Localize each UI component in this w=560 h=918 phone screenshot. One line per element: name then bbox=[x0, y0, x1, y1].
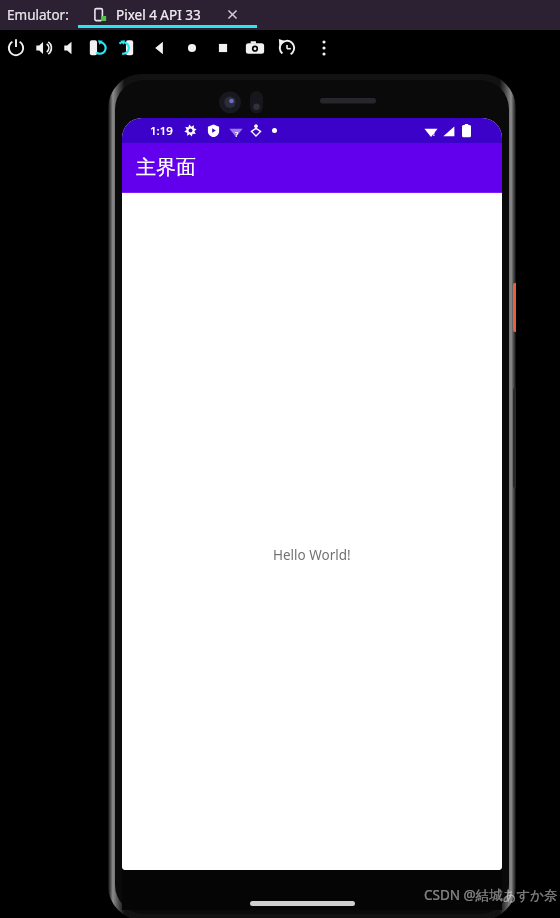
button[interactable]: Rotate right bbox=[113, 36, 137, 60]
button[interactable]: 主界面 bbox=[122, 143, 502, 192]
button[interactable]: Power bbox=[513, 283, 516, 332]
button[interactable]: Rotate left bbox=[86, 36, 110, 60]
staticText: CSDN @結城あすか奈 bbox=[424, 886, 558, 904]
button[interactable]: Record bbox=[275, 36, 299, 60]
button[interactable]: Back bbox=[148, 36, 172, 60]
staticText: Emulator: bbox=[7, 6, 69, 24]
button[interactable]: Screenshot bbox=[243, 36, 267, 60]
button[interactable]: Volume down bbox=[59, 36, 83, 60]
button[interactable]: Volume up bbox=[32, 36, 56, 60]
button[interactable]: Power bbox=[4, 36, 28, 60]
button[interactable]: Overview bbox=[211, 36, 235, 60]
staticText: 1:19 bbox=[150, 123, 173, 139]
staticText: ? bbox=[235, 129, 239, 139]
staticText: 主界面 bbox=[136, 155, 196, 180]
staticText: Pixel 4 API 33 bbox=[116, 6, 201, 24]
button[interactable]: Close tab bbox=[224, 6, 241, 23]
staticText: Hello World! bbox=[273, 546, 351, 564]
button[interactable]: Pixel 4 API 33 bbox=[78, 0, 257, 30]
staticText: ! bbox=[433, 129, 435, 138]
button[interactable]: More bbox=[312, 36, 336, 60]
button[interactable]: Home bbox=[180, 36, 204, 60]
